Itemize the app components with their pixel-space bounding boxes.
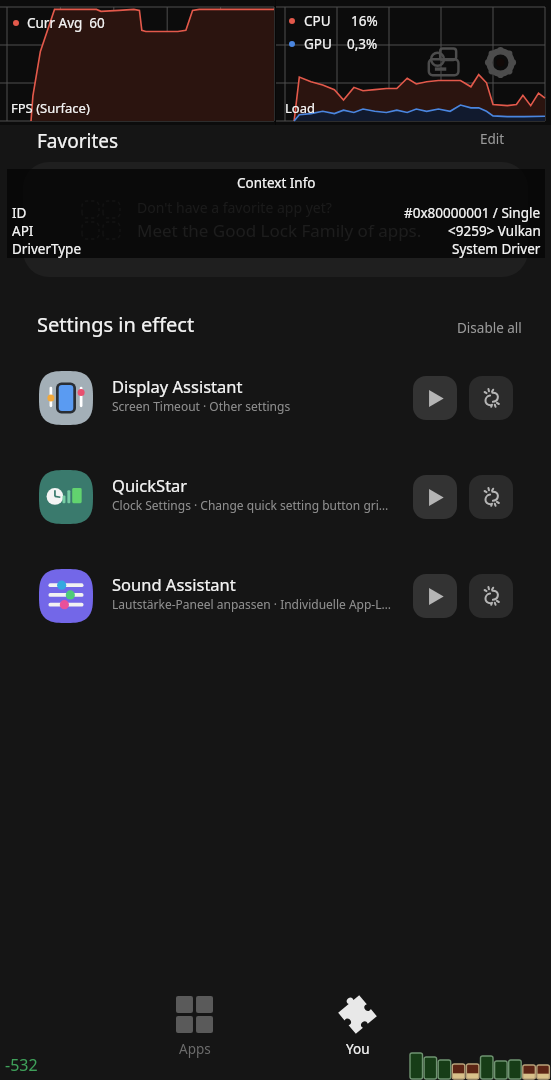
staticText: CPU xyxy=(304,12,331,30)
button[interactable]: Disable all xyxy=(435,311,551,345)
staticText: Screen Timeout · Other settings xyxy=(112,398,291,414)
staticText: Clock Settings · Change quick setting bu… xyxy=(112,497,389,513)
staticText: DriverType xyxy=(12,240,81,258)
staticText: -532 xyxy=(5,1054,38,1076)
button[interactable]: Don't have a favorite app yet? xyxy=(23,162,528,277)
staticText: #0x80000001 / Single xyxy=(404,204,541,222)
button[interactable]: Sound Assistant xyxy=(0,546,551,645)
staticText: ID xyxy=(12,204,27,222)
staticText: Favorites xyxy=(37,128,119,154)
button[interactable]: Edit xyxy=(450,122,551,156)
staticText: Sound Assistant xyxy=(112,573,236,595)
staticText: System Driver xyxy=(452,240,541,258)
staticText: 0,3% xyxy=(347,35,378,53)
button[interactable]: Disable xyxy=(469,376,513,420)
button[interactable]: Play xyxy=(413,475,457,519)
button[interactable]: Disable xyxy=(469,574,513,618)
staticText: Edit xyxy=(480,130,505,148)
button[interactable]: Play xyxy=(413,574,457,618)
staticText: API xyxy=(12,222,34,240)
staticText: Meet the Good Lock Family of apps. xyxy=(137,219,422,242)
staticText: Don't have a favorite app yet? xyxy=(137,198,332,217)
staticText: Apps xyxy=(179,1040,211,1058)
staticText: Context Info xyxy=(237,174,316,192)
staticText: You xyxy=(346,1040,370,1058)
staticText: GPU xyxy=(304,35,332,53)
staticText: FPS (Surface) xyxy=(11,99,90,117)
staticText: Lautstärke-Paneel anpassen · Individuell… xyxy=(112,596,392,612)
staticText: Settings in effect xyxy=(37,311,195,338)
button[interactable]: Display Assistant xyxy=(0,348,551,447)
staticText: QuickStar xyxy=(112,474,188,496)
button[interactable]: QuickStar xyxy=(0,447,551,546)
staticText: Disable all xyxy=(457,319,522,337)
staticText: Load xyxy=(285,99,315,117)
button[interactable]: You xyxy=(276,975,439,1080)
staticText: 16% xyxy=(351,12,378,30)
button[interactable]: Disable xyxy=(469,475,513,519)
button[interactable]: Apps xyxy=(113,975,276,1080)
staticText: <9259> Vulkan xyxy=(448,222,541,240)
staticText: Curr Avg 60 xyxy=(27,14,105,32)
button[interactable]: Play xyxy=(413,376,457,420)
staticText: Display Assistant xyxy=(112,375,243,397)
